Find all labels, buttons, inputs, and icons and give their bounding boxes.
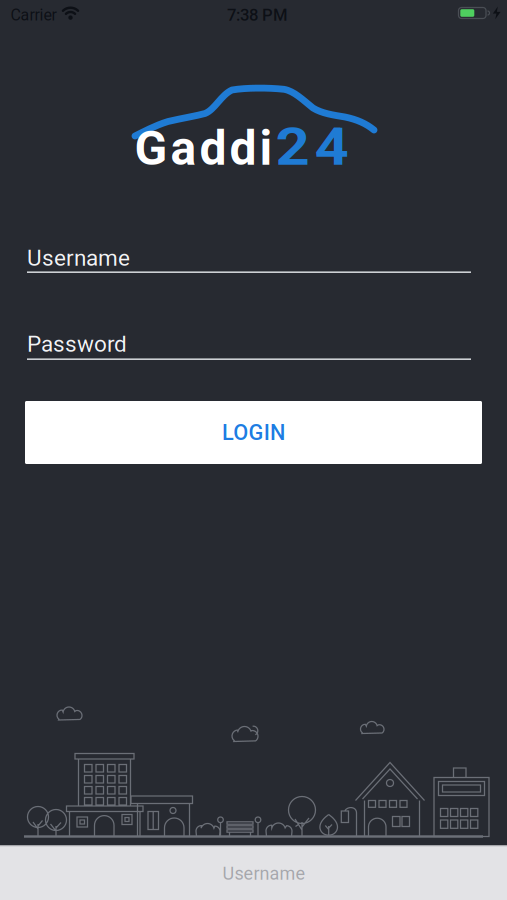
staticText: Username [222,863,305,884]
staticText: Gaddi [134,120,272,176]
button[interactable]: Password [27,314,480,360]
staticText: Carrier [10,6,56,24]
staticText: LOGIN [222,420,285,445]
staticText: Username [27,245,130,271]
button[interactable]: LOGIN [25,401,482,464]
button[interactable]: Username [0,845,507,900]
button[interactable]: Username [27,227,480,273]
staticText: Password [27,331,127,357]
staticText: 7:38 PM [227,5,288,25]
staticText: 24 [275,116,339,177]
